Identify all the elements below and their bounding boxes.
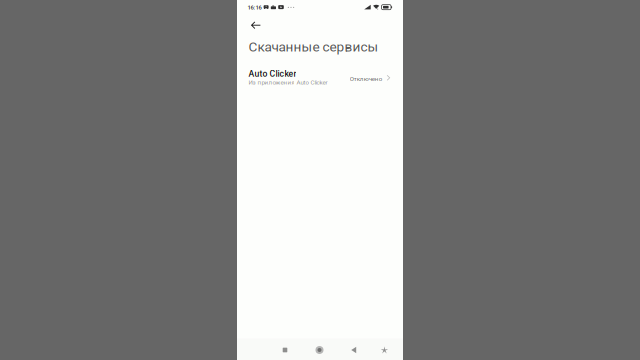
staticText: Из приложения Auto Clicker — [248, 79, 327, 86]
staticText: Отключено — [350, 75, 382, 83]
staticText: 16:16 — [248, 4, 262, 11]
button[interactable]: Back — [342, 338, 366, 360]
button[interactable]: Recents — [273, 338, 297, 360]
staticText: Скачанные сервисы — [248, 39, 378, 55]
button[interactable]: Home — [307, 338, 331, 360]
staticText: Auto Clicker — [248, 69, 296, 79]
button[interactable]: Auto Clicker — [237, 66, 403, 92]
button[interactable]: Back — [243, 15, 267, 35]
button[interactable]: Accessibility menu — [372, 338, 396, 360]
